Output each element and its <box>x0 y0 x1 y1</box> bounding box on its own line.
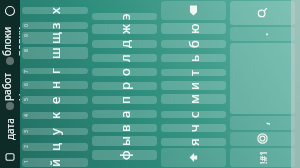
button[interactable]: в <box>92 124 157 132</box>
button[interactable]: 0 <box>22 22 88 29</box>
button[interactable]: ы <box>92 136 157 146</box>
button[interactable]: ч <box>161 124 226 132</box>
staticText: 9 <box>23 34 30 37</box>
button[interactable]: б <box>161 40 226 48</box>
staticText: и <box>185 81 203 90</box>
staticText: т <box>185 69 203 76</box>
button[interactable]: ь <box>161 54 226 62</box>
button[interactable]: п <box>92 96 157 104</box>
button[interactable]: х <box>22 7 88 14</box>
staticText: работы <box>0 67 20 101</box>
button[interactable]: ж <box>92 24 157 34</box>
staticText: 8 <box>23 49 30 52</box>
staticText: 7 <box>23 70 30 73</box>
staticText: !#1 <box>257 150 269 164</box>
staticText: 0 <box>23 24 30 27</box>
button[interactable]: 4 <box>22 112 88 119</box>
staticText: п <box>116 96 134 104</box>
staticText: у <box>46 128 64 135</box>
button[interactable]: и <box>161 81 226 90</box>
button[interactable]: работы <box>0 67 20 101</box>
button[interactable]: р <box>92 82 157 90</box>
staticText: м <box>185 94 203 104</box>
staticText: ю <box>185 23 203 34</box>
staticText: ф <box>116 150 134 160</box>
staticText: з <box>46 22 64 29</box>
button[interactable]: дата <box>0 112 20 146</box>
staticText: 2 <box>23 145 30 148</box>
staticText: , <box>255 121 271 125</box>
button[interactable]: д <box>92 40 157 48</box>
button[interactable]: м <box>161 94 226 104</box>
staticText: х <box>46 7 64 14</box>
staticText: э <box>116 13 134 20</box>
button[interactable]: ю <box>161 23 226 34</box>
button[interactable]: Search <box>230 1 295 25</box>
staticText: 3 <box>23 130 30 133</box>
staticText: ц <box>46 143 64 151</box>
button[interactable]: 1 <box>22 158 88 167</box>
staticText: й <box>46 158 64 167</box>
button[interactable]: блокировки <box>0 22 20 56</box>
button[interactable]: ф <box>92 150 157 160</box>
button[interactable]: 6 <box>22 81 88 89</box>
button[interactable]: Settings <box>230 132 295 146</box>
staticText: е <box>46 96 64 104</box>
button[interactable]: Backspace <box>161 1 226 20</box>
staticText: ж <box>116 24 134 34</box>
button[interactable]: 7 <box>22 68 88 74</box>
button[interactable]: т <box>161 69 226 76</box>
staticText: 5 <box>23 98 30 101</box>
button[interactable]: 8 <box>22 47 88 59</box>
staticText: блокировки <box>0 22 20 56</box>
staticText: г <box>46 68 64 74</box>
button[interactable]: 5 <box>22 96 88 104</box>
staticText: 4 <box>23 114 30 117</box>
button[interactable]: 3 <box>22 128 88 135</box>
button[interactable]: Clipboard <box>0 146 20 168</box>
staticText: ь <box>185 54 203 62</box>
button[interactable]: я <box>161 138 226 146</box>
staticText: 1 <box>23 160 30 163</box>
button[interactable]: . <box>230 27 295 41</box>
button[interactable]: Shift <box>161 148 226 167</box>
button[interactable]: л <box>92 54 157 62</box>
staticText: 6 <box>23 83 30 86</box>
staticText: я <box>185 138 203 146</box>
staticText: в <box>116 124 134 132</box>
staticText: с <box>185 111 203 118</box>
button[interactable]: о <box>92 68 157 76</box>
staticText: л <box>116 54 134 62</box>
staticText: д <box>116 40 134 48</box>
staticText: дата <box>3 118 17 140</box>
staticText: щ <box>46 32 64 44</box>
staticText: а <box>116 110 134 118</box>
button[interactable]: 9 <box>22 32 88 44</box>
staticText: н <box>46 81 64 89</box>
button[interactable]: !#1 <box>230 148 295 167</box>
button[interactable]: э <box>92 13 157 20</box>
button[interactable]: а <box>92 110 157 118</box>
button[interactable]: 2 <box>22 143 88 151</box>
staticText: р <box>116 82 134 90</box>
staticText: о <box>116 68 134 76</box>
button[interactable]: с <box>161 111 226 118</box>
staticText: к <box>46 112 64 119</box>
staticText: ы <box>116 136 134 146</box>
staticText: . <box>255 32 271 36</box>
button[interactable]: Emoji <box>0 0 20 22</box>
button[interactable]: Space <box>230 43 295 114</box>
staticText: б <box>185 40 203 48</box>
staticText: ш <box>46 47 64 59</box>
button[interactable]: , <box>230 116 295 130</box>
staticText: ч <box>185 124 203 132</box>
